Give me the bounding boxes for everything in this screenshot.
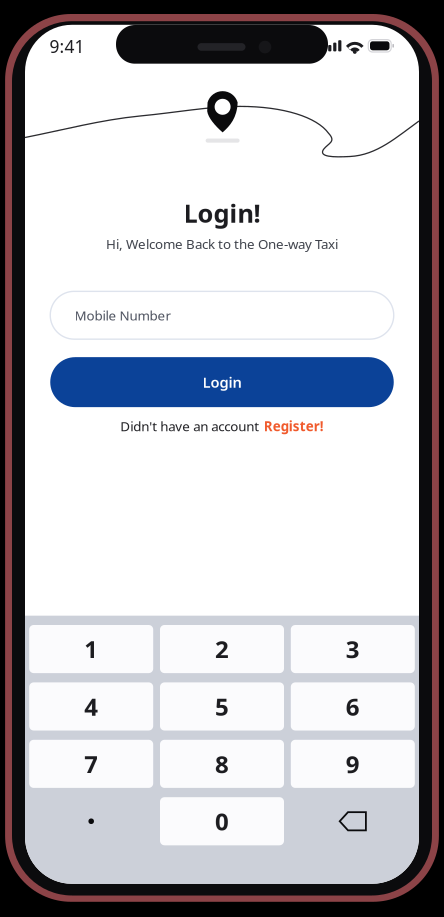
button[interactable]: Decimal point <box>29 797 153 845</box>
staticText: 6 <box>346 690 360 722</box>
staticText: Login <box>202 372 241 392</box>
staticText: 8 <box>215 748 229 780</box>
button[interactable]: 7 <box>29 740 153 788</box>
button[interactable]: 0 <box>160 797 284 845</box>
staticText: 7 <box>84 748 98 780</box>
staticText: 2 <box>215 633 229 665</box>
button[interactable]: 2 <box>160 625 284 673</box>
button[interactable]: Didn't have an account <box>120 417 324 435</box>
button[interactable]: 9 <box>291 740 415 788</box>
button[interactable]: 6 <box>291 682 415 730</box>
button[interactable]: Delete <box>291 797 415 845</box>
staticText: 4 <box>84 690 98 722</box>
button[interactable]: 5 <box>160 682 284 730</box>
button[interactable]: 1 <box>29 625 153 673</box>
staticText: Hi, Welcome Back to the One-way Taxi <box>106 235 338 253</box>
staticText: Didn't have an account <box>120 417 259 435</box>
button[interactable]: 4 <box>29 682 153 730</box>
staticText: 1 <box>84 633 98 665</box>
staticText: Mobile Number <box>74 306 171 324</box>
staticText: 3 <box>346 633 360 665</box>
staticText: 9 <box>346 748 360 780</box>
button[interactable]: Mobile Number <box>50 291 394 339</box>
staticText: 5 <box>215 690 229 722</box>
button[interactable]: Login <box>50 357 394 407</box>
staticText: Login! <box>183 196 260 230</box>
staticText: 0 <box>215 805 229 837</box>
button[interactable]: 3 <box>291 625 415 673</box>
staticText: 9:41 <box>49 35 84 58</box>
button[interactable]: 8 <box>160 740 284 788</box>
staticText: Register! <box>264 417 324 435</box>
